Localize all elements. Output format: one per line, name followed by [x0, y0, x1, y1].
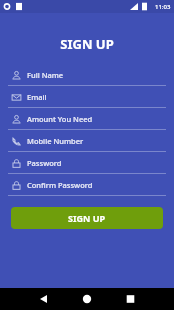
staticText: SIGN UP	[68, 212, 106, 224]
staticText: Email	[27, 92, 47, 102]
button[interactable]: SIGN UP	[11, 207, 163, 229]
staticText: Password	[27, 158, 62, 168]
button[interactable]: Full Name	[0, 65, 174, 87]
button[interactable]: Email	[0, 87, 174, 109]
button[interactable]: Mobile Number	[0, 131, 174, 153]
staticText: Full Name	[27, 70, 64, 80]
staticText: 11:03	[155, 3, 171, 11]
button[interactable]: Password	[0, 153, 174, 175]
staticText: Amount You Need	[27, 114, 93, 124]
staticText: Confirm Password	[27, 180, 93, 190]
button[interactable]: Amount You Need	[0, 109, 174, 131]
staticText: SIGN UP	[60, 35, 114, 53]
button[interactable]: Confirm Password	[0, 175, 174, 197]
staticText: Mobile Number	[27, 136, 84, 146]
